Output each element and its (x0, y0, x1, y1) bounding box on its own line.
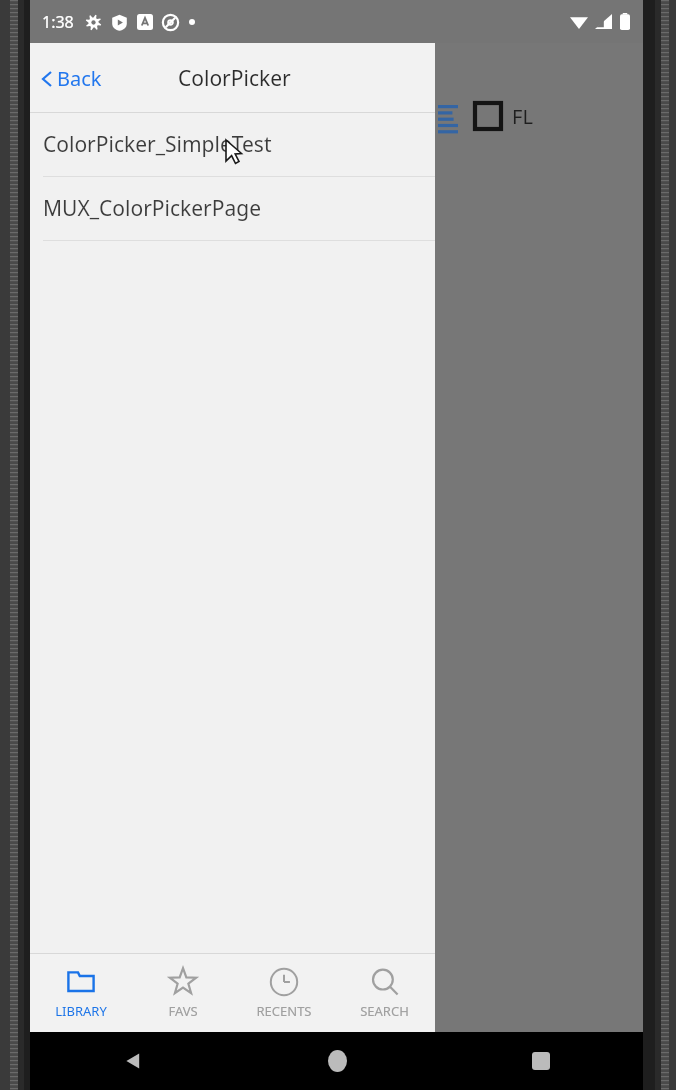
button[interactable]: FAVS (132, 954, 233, 1032)
button[interactable]: Back (30, 1032, 235, 1090)
button[interactable]: Back (36, 57, 108, 100)
staticText: 1:38 (42, 11, 74, 33)
button[interactable]: SEARCH (334, 954, 435, 1032)
button[interactable]: MUX_ColorPickerPage (30, 177, 435, 241)
button[interactable]: LIBRARY (30, 954, 132, 1032)
staticText: ColorPicker (178, 64, 291, 93)
staticText: Back (57, 65, 102, 92)
staticText: FAVS (168, 1002, 198, 1020)
staticText: RECENTS (256, 1002, 312, 1020)
staticText: ColorPicker_SimpleTest (43, 130, 272, 159)
button[interactable]: Home (235, 1032, 439, 1090)
button[interactable]: Menu (437, 101, 459, 131)
button[interactable]: ColorPicker_SimpleTest (30, 113, 435, 177)
button[interactable]: Recents (439, 1032, 643, 1090)
staticText: LIBRARY (55, 1002, 107, 1020)
button[interactable]: RECENTS (233, 954, 334, 1032)
button[interactable]: Stop (471, 99, 505, 133)
staticText: SEARCH (360, 1002, 409, 1020)
staticText: FL (512, 103, 533, 130)
staticText: MUX_ColorPickerPage (43, 194, 261, 223)
